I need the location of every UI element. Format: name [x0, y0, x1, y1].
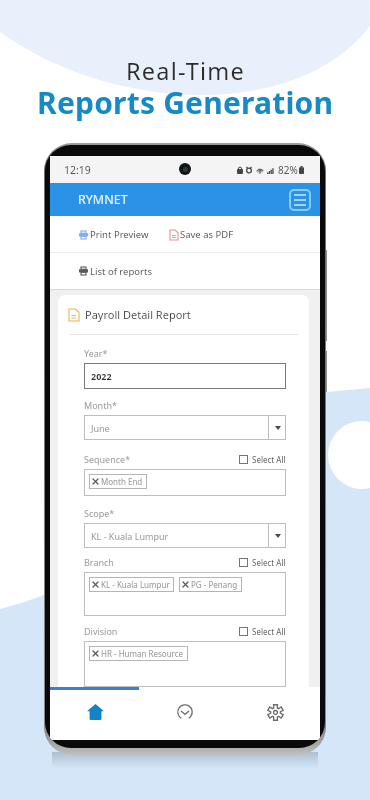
staticText: 12:19 — [64, 163, 91, 177]
staticText: RYMNET — [78, 191, 128, 208]
button[interactable]: 2022 — [84, 363, 286, 389]
button[interactable]: Month End — [84, 469, 286, 496]
staticText: Branch — [84, 556, 114, 568]
button[interactable]: Select All — [239, 557, 286, 568]
staticText: Reports Generation — [37, 82, 334, 123]
button[interactable]: Print Preview — [79, 228, 149, 241]
button[interactable]: History — [140, 690, 230, 740]
staticText: Month End — [101, 476, 143, 487]
staticText: Scope* — [84, 507, 115, 519]
button[interactable]: Select All — [239, 454, 286, 465]
button[interactable]: Save as PDF — [170, 228, 234, 241]
staticText: Sequence* — [84, 453, 131, 465]
staticText: Select All — [252, 454, 286, 465]
staticText: PG - Penang — [191, 579, 238, 590]
staticText: Year* — [84, 347, 108, 359]
staticText: 82% — [278, 163, 298, 177]
staticText: KL - Kuala Lumpur — [101, 579, 170, 590]
button[interactable]: Settings — [230, 690, 320, 740]
button[interactable]: HR - Human Resource — [84, 641, 286, 687]
staticText: Select All — [252, 626, 286, 637]
staticText: Print Preview — [90, 228, 149, 241]
button[interactable]: Select All — [239, 626, 286, 637]
staticText: List of reports — [90, 265, 152, 278]
button[interactable]: Menu — [289, 189, 311, 211]
button[interactable]: June — [84, 415, 286, 440]
button[interactable]: List of reports — [79, 253, 320, 289]
button[interactable]: KL - Kuala Lumpur — [84, 572, 286, 616]
staticText: Select All — [252, 557, 286, 568]
button[interactable]: Home — [50, 690, 140, 740]
staticText: Save as PDF — [180, 228, 234, 241]
button[interactable]: KL - Kuala Lumpur — [84, 523, 286, 548]
staticText: Payroll Detail Report — [85, 307, 191, 322]
staticText: Division — [84, 625, 118, 637]
staticText: Real-Time — [126, 55, 245, 87]
staticText: 2022 — [91, 370, 112, 382]
staticText: KL - Kuala Lumpur — [91, 530, 268, 542]
staticText: Month* — [84, 399, 117, 411]
staticText: June — [91, 422, 268, 434]
staticText: HR - Human Resource — [101, 648, 184, 659]
